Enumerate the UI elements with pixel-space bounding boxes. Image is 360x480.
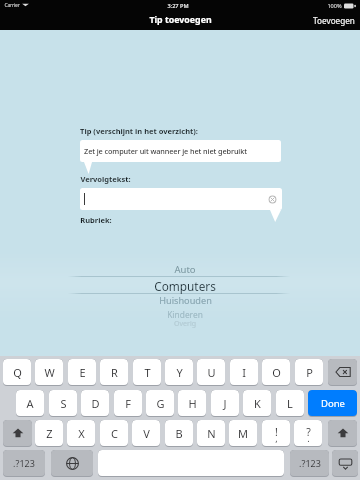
button[interactable]: X bbox=[67, 420, 95, 447]
button[interactable]: Q bbox=[3, 359, 31, 386]
button[interactable]: O bbox=[262, 359, 290, 386]
button[interactable]: A bbox=[16, 390, 44, 417]
staticText: Toevoegen bbox=[313, 15, 355, 26]
button[interactable]: Done bbox=[308, 390, 357, 417]
staticText: Huishouden bbox=[159, 294, 212, 307]
button[interactable]: M bbox=[229, 420, 257, 447]
button[interactable]: L bbox=[276, 390, 304, 417]
staticText: Q bbox=[13, 365, 22, 380]
button[interactable]: V bbox=[132, 420, 160, 447]
staticText: G bbox=[156, 396, 165, 411]
staticText: E bbox=[79, 365, 86, 380]
staticText: Vervolgtekst: bbox=[80, 174, 131, 184]
button[interactable]: .?123 bbox=[3, 450, 45, 477]
staticText: 100% bbox=[327, 2, 342, 10]
staticText: Z bbox=[46, 426, 53, 441]
staticText: R bbox=[111, 365, 118, 380]
staticText: Auto bbox=[174, 263, 196, 276]
button[interactable]: N bbox=[197, 420, 225, 447]
button[interactable]: U bbox=[197, 359, 225, 386]
button[interactable]: E bbox=[68, 359, 96, 386]
staticText: ! bbox=[275, 425, 278, 439]
button[interactable]: J bbox=[211, 390, 239, 417]
staticText: Kinderen bbox=[167, 309, 203, 320]
button[interactable]: Backspace bbox=[328, 359, 357, 386]
button[interactable]: Shift right bbox=[328, 420, 357, 447]
button[interactable]: Shift bbox=[3, 420, 32, 447]
button[interactable]: F bbox=[114, 390, 142, 417]
button[interactable]: ? bbox=[294, 420, 322, 447]
staticText: D bbox=[91, 396, 100, 411]
button[interactable]: H bbox=[178, 390, 206, 417]
button[interactable]: Clear text bbox=[268, 195, 277, 204]
button[interactable]: ! bbox=[262, 420, 290, 447]
staticText: .?123 bbox=[13, 457, 35, 469]
button[interactable]: Zet je computer uit wanneer je het niet … bbox=[80, 140, 281, 162]
staticText: L bbox=[287, 396, 293, 411]
staticText: .?123 bbox=[299, 457, 321, 469]
staticText: Overig bbox=[174, 319, 196, 329]
button[interactable]: K bbox=[243, 390, 271, 417]
staticText: B bbox=[175, 426, 183, 441]
staticText: Rubriek: bbox=[80, 215, 112, 225]
staticText: J bbox=[223, 396, 227, 411]
staticText: , bbox=[275, 432, 278, 444]
staticText: . bbox=[307, 432, 310, 444]
button[interactable]: G bbox=[146, 390, 174, 417]
button[interactable]: T bbox=[133, 359, 161, 386]
staticText: 3:27 PM bbox=[167, 2, 189, 10]
button[interactable]: B bbox=[165, 420, 193, 447]
button[interactable]: C bbox=[100, 420, 128, 447]
button[interactable]: W bbox=[35, 359, 63, 386]
staticText: P bbox=[306, 365, 313, 380]
staticText: Computers bbox=[154, 278, 216, 294]
staticText: F bbox=[125, 396, 131, 411]
staticText: V bbox=[143, 426, 150, 441]
staticText: X bbox=[78, 426, 85, 441]
staticText: C bbox=[111, 426, 118, 441]
staticText: O bbox=[272, 365, 281, 380]
button[interactable]: I bbox=[230, 359, 258, 386]
staticText: Zet je computer uit wanneer je het niet … bbox=[84, 146, 247, 156]
staticText: ? bbox=[306, 425, 311, 439]
button[interactable]: .?123 bbox=[290, 450, 329, 477]
staticText: Carrier bbox=[4, 2, 20, 9]
staticText: Tip (verschijnt in het overzicht): bbox=[80, 126, 198, 136]
staticText: T bbox=[144, 365, 151, 380]
staticText: Y bbox=[176, 365, 183, 380]
button[interactable]: S bbox=[49, 390, 77, 417]
staticText: W bbox=[44, 365, 55, 380]
button[interactable] bbox=[98, 450, 284, 477]
button[interactable]: Globe bbox=[51, 450, 93, 477]
staticText: Tip toevoegen bbox=[149, 14, 212, 26]
staticText: S bbox=[60, 396, 67, 411]
button[interactable]: Hide keyboard bbox=[332, 450, 358, 477]
button[interactable]: Clear text bbox=[80, 188, 282, 210]
button[interactable]: Toevoegen bbox=[313, 15, 360, 26]
staticText: U bbox=[207, 365, 216, 380]
button[interactable]: R bbox=[100, 359, 128, 386]
button[interactable]: Z bbox=[35, 420, 63, 447]
button[interactable]: P bbox=[295, 359, 323, 386]
staticText: H bbox=[188, 396, 197, 411]
button[interactable]: Y bbox=[165, 359, 193, 386]
staticText: M bbox=[238, 426, 248, 441]
button[interactable]: D bbox=[81, 390, 109, 417]
staticText: I bbox=[242, 365, 246, 380]
staticText: N bbox=[207, 426, 216, 441]
staticText: A bbox=[26, 396, 34, 411]
staticText: K bbox=[254, 396, 261, 411]
staticText: Done bbox=[321, 397, 345, 410]
